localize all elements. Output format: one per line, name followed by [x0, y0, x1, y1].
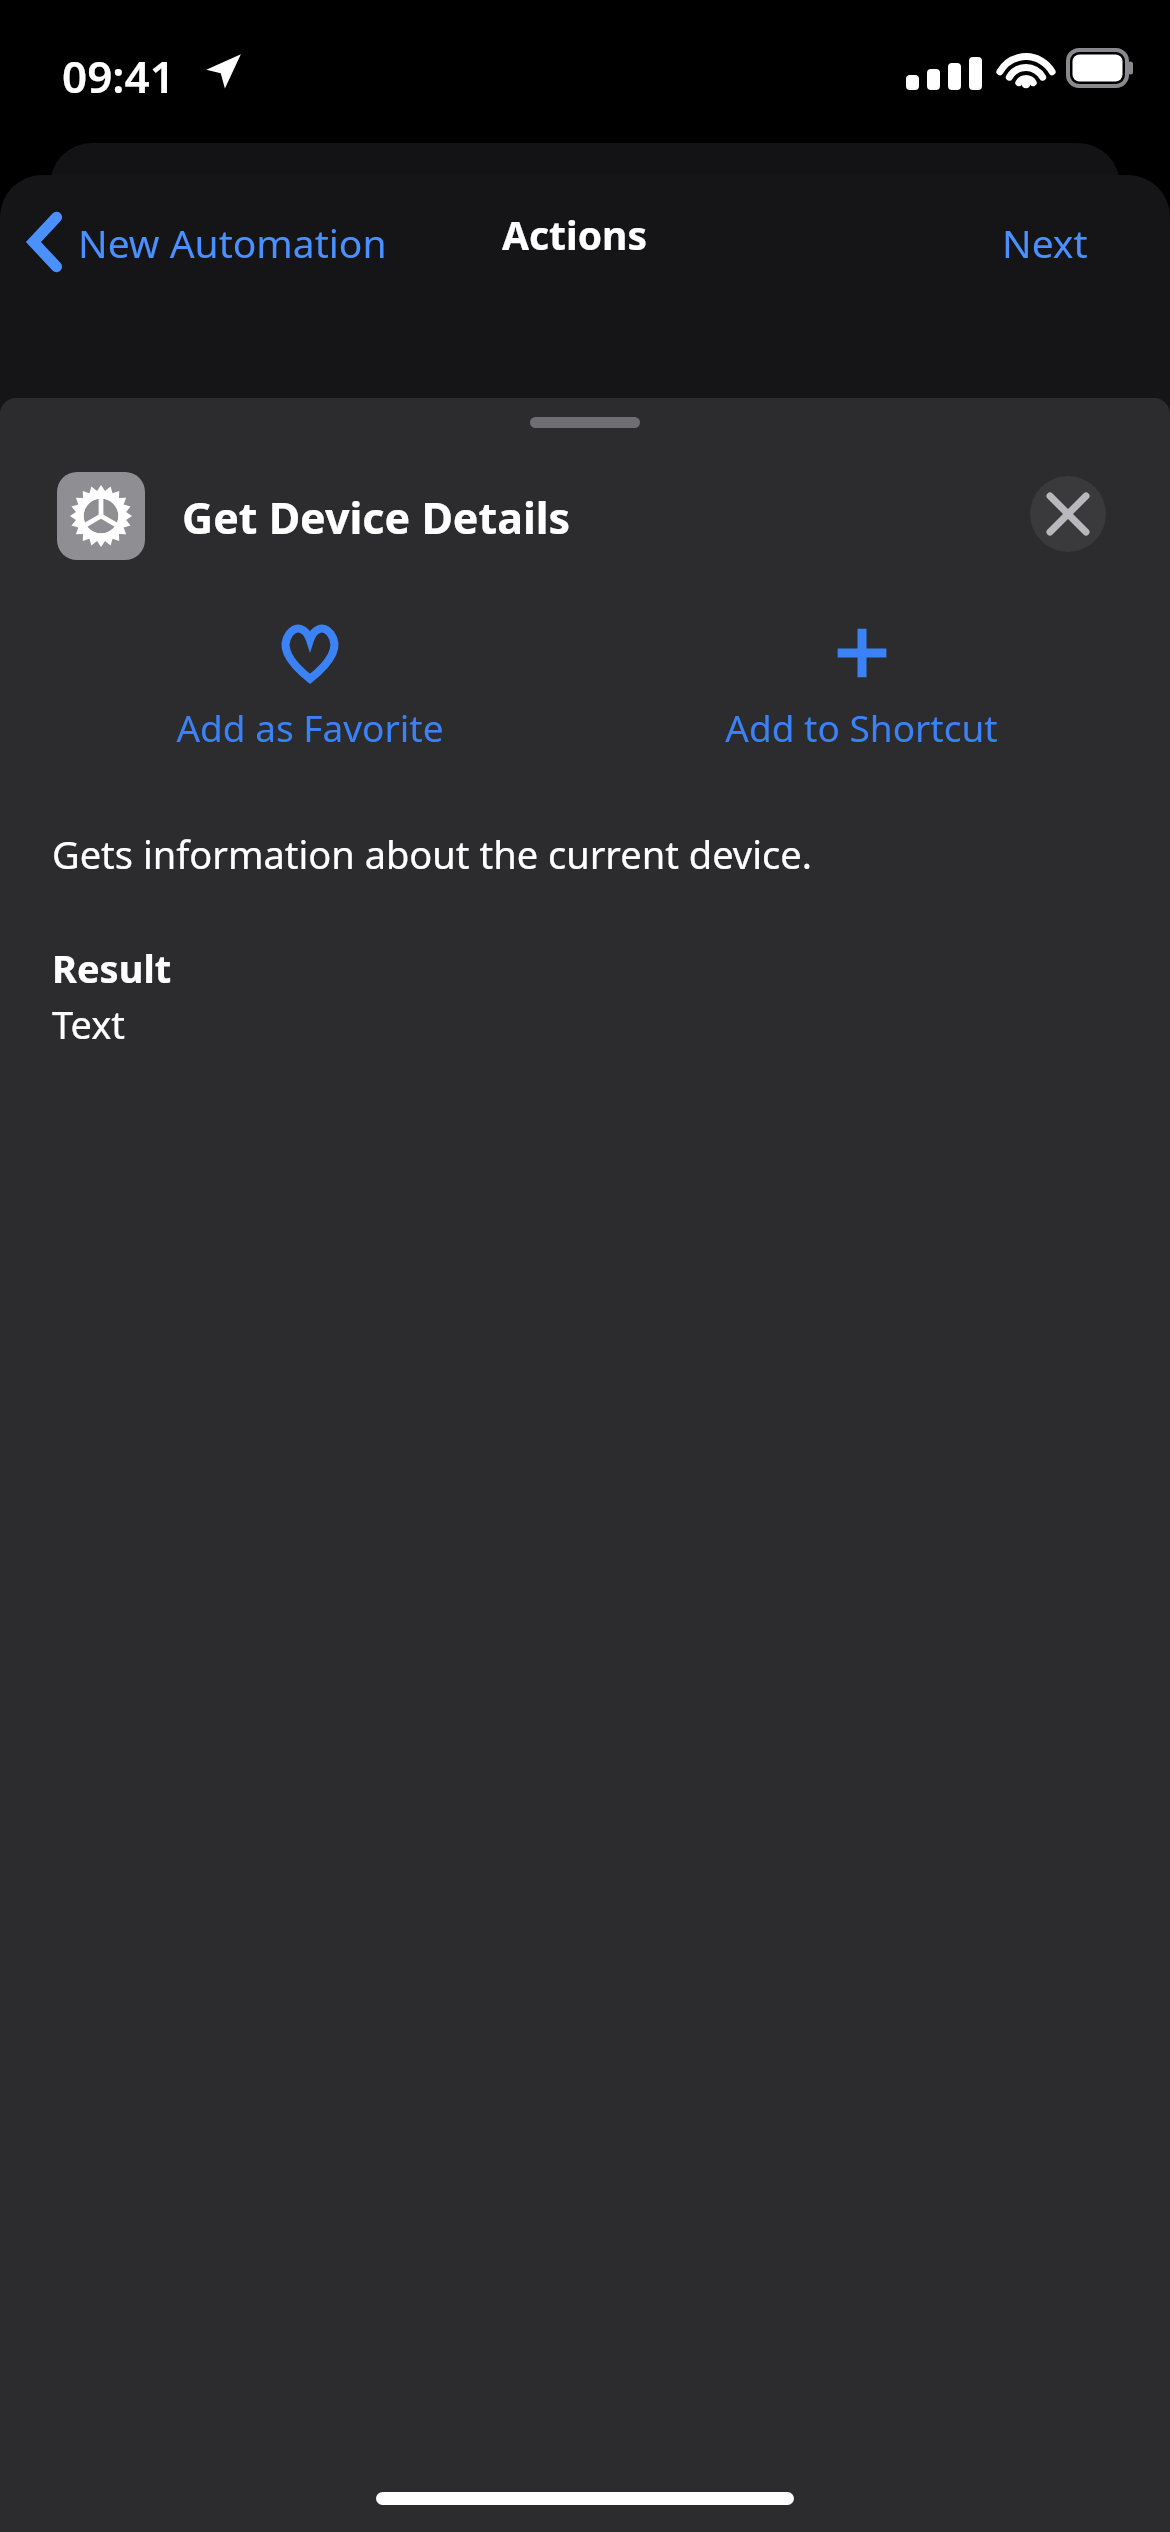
button[interactable]: Add as Favorite: [80, 626, 540, 776]
staticText: Add to Shortcut: [725, 702, 998, 752]
staticText: Gets information about the current devic…: [52, 828, 812, 880]
button[interactable]: New Automation: [14, 196, 397, 288]
staticText: Get Device Details: [182, 488, 571, 547]
button[interactable]: Next: [988, 196, 1102, 288]
staticText: New Automation: [78, 216, 387, 269]
staticText: Add as Favorite: [176, 702, 444, 752]
staticText: Next: [1002, 216, 1088, 269]
button[interactable]: Close: [1030, 476, 1106, 552]
staticText: Text: [52, 998, 125, 1050]
staticText: Actions: [502, 208, 648, 261]
staticText: 09:41: [62, 46, 175, 106]
staticText: Result: [52, 942, 172, 994]
button[interactable]: Get Device Details icon: [57, 472, 145, 560]
button[interactable]: Add to Shortcut: [631, 626, 1091, 776]
